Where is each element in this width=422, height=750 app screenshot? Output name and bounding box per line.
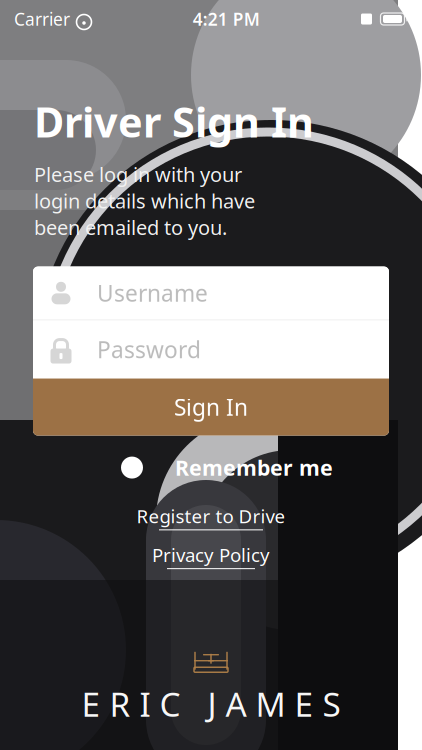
staticText: Remember me (175, 453, 333, 482)
staticText: 4:21 PM (193, 7, 260, 30)
staticText: Please log in with your login details wh… (34, 161, 255, 241)
staticText: Password (97, 334, 201, 365)
staticText: E R I C J A M E S (81, 682, 340, 726)
staticText: Privacy Policy (152, 542, 270, 567)
staticText: Driver Sign In (34, 94, 314, 149)
staticText: Register to Drive (136, 504, 285, 528)
button[interactable]: Privacy Policy (152, 542, 270, 569)
button[interactable]: Username (33, 267, 389, 320)
staticText: Carrier (14, 7, 70, 30)
button[interactable]: Sign In (33, 379, 389, 436)
button[interactable]: Remember me (121, 448, 333, 488)
button[interactable]: Register to Drive (136, 504, 285, 530)
button[interactable]: Password (33, 321, 389, 379)
staticText: Sign In (174, 392, 248, 422)
staticText: Username (97, 278, 208, 308)
